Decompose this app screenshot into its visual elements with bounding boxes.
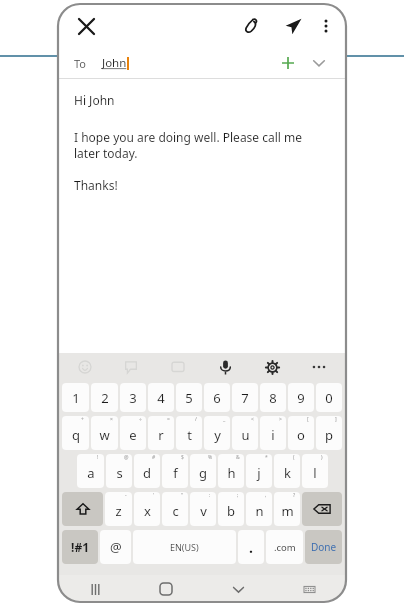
button[interactable]: % xyxy=(190,454,216,488)
staticText: @ xyxy=(110,538,122,556)
button[interactable]: 3 xyxy=(120,383,146,412)
button[interactable]: Stickers xyxy=(120,356,142,378)
staticText: > xyxy=(279,416,282,423)
staticText: " xyxy=(181,492,184,499)
staticText: t xyxy=(187,426,192,444)
button[interactable]: More options xyxy=(313,13,339,39)
staticText: & xyxy=(236,454,240,461)
button[interactable]: Voice input xyxy=(214,356,236,378)
button[interactable]: 6 xyxy=(204,383,230,412)
button[interactable]: Space xyxy=(133,530,236,564)
button[interactable]: Send xyxy=(279,12,307,40)
button[interactable]: ] xyxy=(316,416,342,450)
staticText: o xyxy=(297,426,305,444)
button[interactable]: GIF xyxy=(167,356,189,378)
staticText: v xyxy=(200,502,207,520)
button[interactable]: × xyxy=(91,416,118,450)
staticText: p xyxy=(325,426,333,444)
staticText: 9 xyxy=(297,389,305,407)
button[interactable]: ; xyxy=(218,492,244,526)
button[interactable]: * xyxy=(246,454,272,488)
button[interactable]: , xyxy=(246,492,272,526)
button[interactable]: 4 xyxy=(148,383,174,412)
button[interactable]: ! xyxy=(77,454,104,488)
button[interactable]: 2 xyxy=(91,383,118,412)
button[interactable]: More keyboard options xyxy=(308,356,330,378)
staticText: m xyxy=(281,502,294,520)
staticText: z xyxy=(115,502,122,520)
staticText: / xyxy=(195,416,197,423)
button[interactable]: # xyxy=(134,454,160,488)
button[interactable]: 9 xyxy=(288,383,314,412)
staticText: EN(US) xyxy=(170,541,199,553)
staticText: c xyxy=(172,502,179,520)
button[interactable]: 5 xyxy=(176,383,202,412)
staticText: @ xyxy=(124,454,129,461)
staticText: d xyxy=(143,464,151,482)
button[interactable]: - xyxy=(105,492,132,526)
staticText: 0 xyxy=(325,389,333,407)
button[interactable]: 7 xyxy=(232,383,258,412)
button[interactable]: / xyxy=(176,416,202,450)
staticText: u xyxy=(241,426,250,444)
button[interactable]: Recents xyxy=(82,576,108,602)
button[interactable]: Emoji xyxy=(74,356,96,378)
button[interactable]: = xyxy=(148,416,174,450)
button[interactable]: @ xyxy=(106,454,132,488)
button[interactable]: ' xyxy=(134,492,160,526)
staticText: I hope you are doing well. Please call m… xyxy=(74,129,330,162)
button[interactable]: 8 xyxy=(260,383,286,412)
button[interactable]: Hide keyboard xyxy=(225,576,251,602)
button[interactable]: Add recipient xyxy=(277,52,299,74)
button[interactable]: Period xyxy=(238,530,264,564)
button[interactable]: 0 xyxy=(316,383,342,412)
button[interactable]: Expand recipients xyxy=(308,52,330,74)
button[interactable]: < xyxy=(232,416,258,450)
button[interactable]: ? xyxy=(274,492,300,526)
staticText: 8 xyxy=(269,389,277,407)
staticText: To xyxy=(74,56,87,71)
button[interactable]: [ xyxy=(288,416,314,450)
staticText: n xyxy=(255,502,264,520)
staticText: ) xyxy=(321,454,323,461)
button[interactable]: .com xyxy=(266,530,303,564)
staticText: Hi John xyxy=(74,92,115,108)
button[interactable]: > xyxy=(260,416,286,450)
staticText: [ xyxy=(307,416,309,423)
button[interactable]: Attach xyxy=(237,12,265,40)
staticText: ÷ xyxy=(139,416,142,423)
staticText: s xyxy=(116,464,123,482)
button[interactable]: $ xyxy=(162,454,188,488)
staticText: 4 xyxy=(157,389,165,407)
button[interactable]: Switch keyboard xyxy=(296,576,322,602)
staticText: a xyxy=(87,464,95,482)
button[interactable]: + xyxy=(62,416,89,450)
button[interactable]: To xyxy=(58,48,346,78)
button[interactable]: At sign xyxy=(100,530,131,564)
button[interactable]: _ xyxy=(204,416,230,450)
button[interactable]: Close xyxy=(71,11,101,41)
button[interactable]: Backspace xyxy=(302,492,342,526)
button[interactable]: & xyxy=(218,454,244,488)
staticText: q xyxy=(72,426,80,444)
staticText: Thanks! xyxy=(74,177,118,193)
button[interactable]: Hi John xyxy=(74,79,330,353)
button[interactable]: Done xyxy=(305,530,342,564)
button[interactable]: " xyxy=(162,492,188,526)
button[interactable]: : xyxy=(190,492,216,526)
button[interactable]: 1 xyxy=(62,383,89,412)
staticText: w xyxy=(99,426,110,444)
button[interactable]: ( xyxy=(274,454,300,488)
button[interactable]: Keyboard settings xyxy=(261,356,283,378)
button[interactable]: Shift xyxy=(62,492,103,526)
staticText: 2 xyxy=(101,389,109,407)
staticText: $ xyxy=(181,454,184,461)
staticText: x xyxy=(144,502,151,520)
button[interactable]: ÷ xyxy=(120,416,146,450)
button[interactable]: Symbols xyxy=(62,530,98,564)
button[interactable]: Home xyxy=(153,576,179,602)
staticText: + xyxy=(81,416,84,423)
staticText: , xyxy=(265,492,267,499)
staticText: g xyxy=(199,464,207,482)
button[interactable]: ) xyxy=(302,454,328,488)
